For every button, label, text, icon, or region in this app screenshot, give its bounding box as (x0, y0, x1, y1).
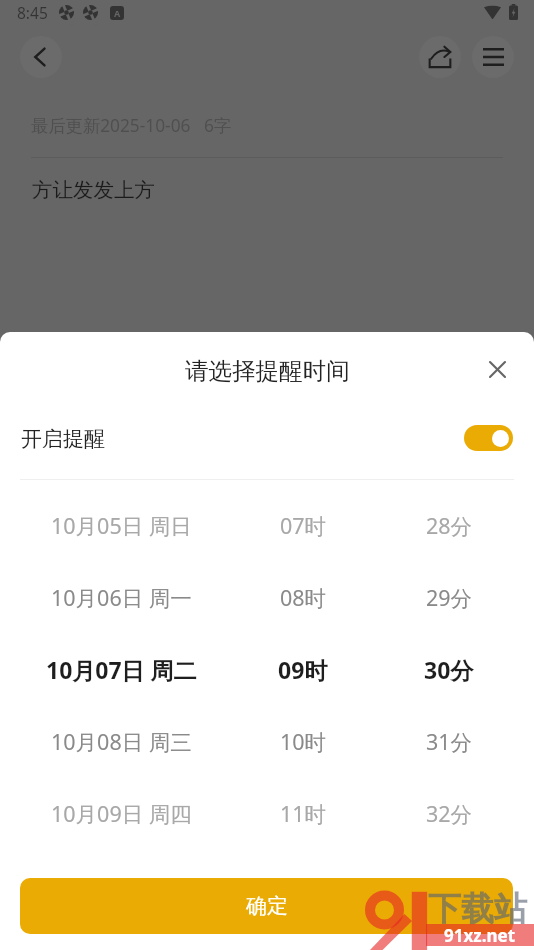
button[interactable]: 29分 (364, 561, 534, 633)
staticText: 29分 (426, 583, 473, 612)
staticText: 10月05日 周日 (51, 511, 192, 540)
button[interactable]: Back (20, 36, 62, 78)
button[interactable]: 11时 (242, 777, 364, 849)
staticText: 8:45 (17, 2, 48, 23)
button[interactable]: 10月06日 周一 (0, 561, 242, 633)
staticText: 10时 (280, 727, 327, 756)
staticText: 开启提醒 (21, 426, 105, 452)
button[interactable]: 10月07日 周二 (0, 633, 242, 705)
button[interactable]: 10月05日 周日 (0, 489, 242, 561)
button[interactable]: 28分 (364, 489, 534, 561)
button[interactable]: 09时 (242, 633, 364, 705)
staticText: 下载站 (428, 888, 527, 930)
staticText: 10月08日 周三 (51, 727, 192, 756)
button[interactable]: 30分 (364, 633, 534, 705)
button[interactable]: 07时 (242, 489, 364, 561)
staticText: 确定 (246, 893, 288, 919)
staticText: 08时 (280, 583, 327, 612)
staticText: 最后更新2025-10-06 6字 (31, 114, 232, 138)
button[interactable]: 08时 (242, 561, 364, 633)
button[interactable]: 32分 (364, 777, 534, 849)
button[interactable]: 确定 (20, 878, 513, 934)
button[interactable]: 10月09日 周四 (0, 777, 242, 849)
staticText: 方让发发上方 (32, 177, 155, 203)
staticText: 请选择提醒时间 (185, 356, 350, 386)
button[interactable]: Close (475, 347, 519, 391)
button[interactable]: Share (419, 36, 461, 78)
staticText: 07时 (280, 511, 327, 540)
staticText: 10月06日 周一 (51, 583, 192, 612)
staticText: A (114, 7, 121, 19)
staticText: 91xz.net (444, 924, 516, 946)
button[interactable]: Enable reminder (464, 425, 513, 451)
staticText: 28分 (426, 511, 473, 540)
staticText: 09时 (278, 654, 328, 685)
staticText: 30分 (424, 654, 474, 685)
staticText: 32分 (426, 799, 473, 828)
button[interactable]: 31分 (364, 705, 534, 777)
button[interactable]: Menu (472, 36, 514, 78)
button[interactable]: 10月08日 周三 (0, 705, 242, 777)
staticText: 11时 (280, 799, 327, 828)
button[interactable]: 10时 (242, 705, 364, 777)
staticText: 10月07日 周二 (46, 654, 197, 685)
staticText: 10月09日 周四 (51, 799, 192, 828)
staticText: 31分 (426, 727, 473, 756)
